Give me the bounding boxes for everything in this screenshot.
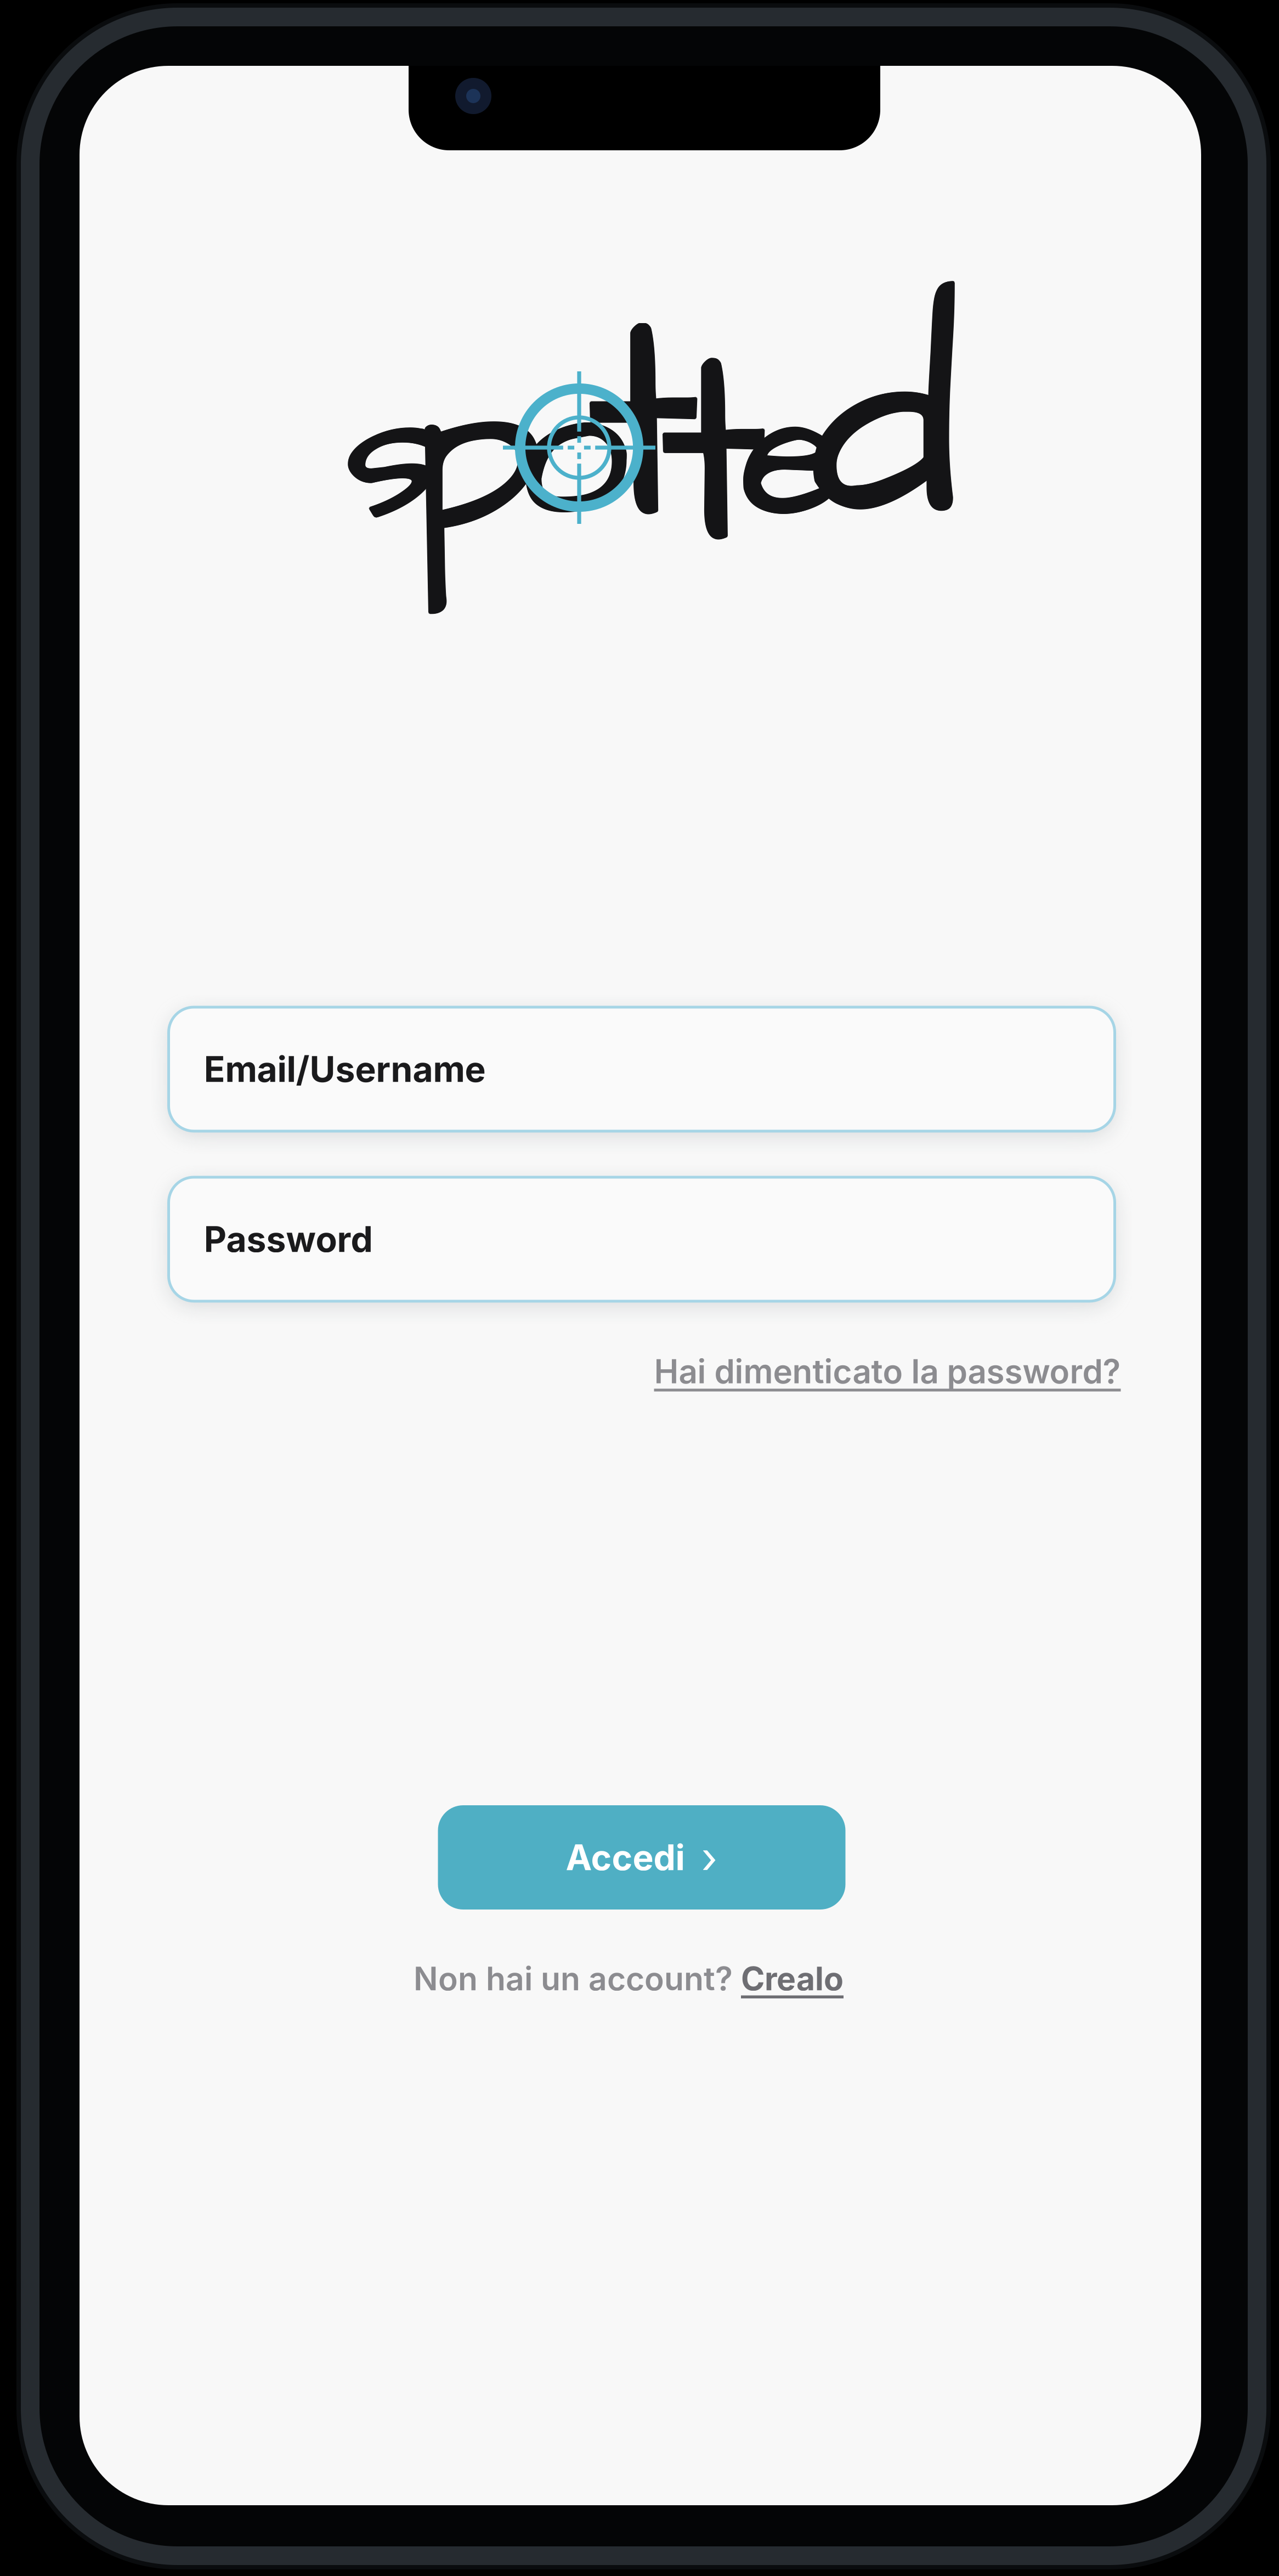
staticText: s <box>345 328 438 584</box>
staticText: o <box>517 313 629 590</box>
staticText: s <box>344 330 437 586</box>
staticText: o <box>518 315 630 591</box>
staticText: s <box>346 330 439 586</box>
staticText: p <box>411 295 541 620</box>
staticText: t <box>660 276 766 642</box>
staticText: s <box>345 329 438 585</box>
staticText: o <box>518 316 630 592</box>
staticText: t <box>660 273 766 639</box>
staticText: t <box>660 275 766 640</box>
staticText: p <box>413 296 543 621</box>
staticText: t <box>587 235 699 621</box>
staticText: t <box>587 236 699 623</box>
staticText: o <box>518 314 630 590</box>
staticText: t <box>586 234 698 620</box>
button[interactable]: Hai dimenticato la password? <box>654 1351 1121 1391</box>
staticText: s <box>347 329 439 585</box>
staticText: s <box>344 328 437 584</box>
staticText: t <box>588 236 700 622</box>
staticText: t <box>588 235 700 621</box>
staticText: p <box>412 295 542 620</box>
staticText: d <box>813 222 962 625</box>
staticText: o <box>516 314 628 590</box>
staticText: p <box>411 296 541 621</box>
button[interactable]: Accedi <box>438 1805 845 1910</box>
staticText: s <box>344 329 437 585</box>
staticText: t <box>661 275 768 640</box>
staticText: Password <box>204 1218 373 1260</box>
staticText: e <box>741 332 841 588</box>
staticText: e <box>742 331 842 587</box>
staticText: p <box>411 294 541 619</box>
staticText: e <box>740 329 840 585</box>
staticText: o <box>515 315 627 591</box>
staticText: e <box>742 330 842 586</box>
staticText: e <box>740 331 840 587</box>
staticText: s <box>346 328 439 584</box>
staticText: p <box>412 293 542 618</box>
staticText: t <box>585 235 698 621</box>
staticText: › <box>701 1832 718 1883</box>
staticText: t <box>587 234 699 620</box>
staticText: Non hai un account? <box>414 1959 741 1998</box>
staticText: e <box>740 330 839 586</box>
staticText: d <box>811 222 960 625</box>
staticText: Accedi <box>566 1836 685 1879</box>
staticText: d <box>811 224 960 627</box>
staticText: d <box>812 225 961 627</box>
staticText: Hai dimenticato la password? <box>654 1351 1121 1391</box>
staticText: p <box>413 295 544 620</box>
staticText: e <box>741 330 841 586</box>
staticText: d <box>813 223 962 626</box>
staticText: d <box>813 224 962 627</box>
button[interactable]: Non hai un account? <box>414 1959 844 1998</box>
staticText: t <box>659 274 765 639</box>
staticText: Email/Username <box>204 1048 486 1090</box>
staticText: e <box>742 329 842 585</box>
staticText: t <box>588 234 700 620</box>
staticText: o <box>517 316 629 593</box>
staticText: Crealo <box>741 1959 844 1998</box>
staticText: d <box>812 222 961 625</box>
staticText: t <box>586 236 698 622</box>
staticText: e <box>741 329 841 585</box>
staticText: t <box>659 276 765 641</box>
staticText: p <box>413 294 543 619</box>
staticText: d <box>812 223 961 626</box>
staticText: o <box>517 315 629 591</box>
staticText: s <box>345 330 438 587</box>
staticText: o <box>516 316 628 592</box>
staticText: t <box>658 275 765 640</box>
staticText: t <box>661 276 767 641</box>
staticText: p <box>412 296 542 621</box>
staticText: t <box>661 274 767 639</box>
staticText: d <box>811 223 959 626</box>
